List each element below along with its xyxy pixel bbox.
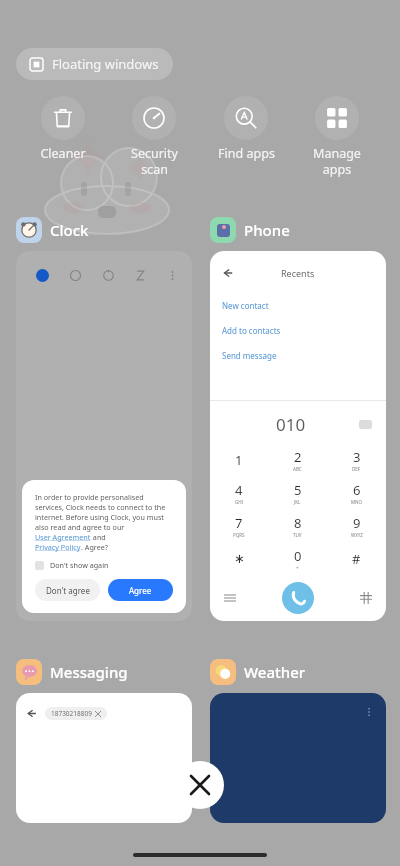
staticText: Add to contacts <box>222 325 281 336</box>
button[interactable]: Add to contacts <box>210 318 386 343</box>
staticText: Don't agree <box>46 585 90 596</box>
button[interactable]: Security scan <box>115 94 193 179</box>
button[interactable]: # <box>327 542 386 575</box>
other: Back <box>222 267 234 279</box>
staticText: New contact <box>222 300 269 311</box>
staticText: Privacy Policy <box>35 542 81 552</box>
staticText: GHI <box>235 499 244 505</box>
staticText: Weather <box>244 662 306 682</box>
button[interactable]: Call <box>282 582 314 614</box>
button[interactable]: Floating windows <box>16 48 173 80</box>
staticText: Find apps <box>218 145 275 162</box>
button[interactable]: Don't show again <box>35 560 109 570</box>
staticText: 6 <box>353 481 361 499</box>
staticText: ABC <box>293 466 302 472</box>
button[interactable]: 3 <box>327 444 386 476</box>
staticText: Don't show again <box>50 560 109 570</box>
button[interactable]: 8 <box>268 509 327 542</box>
button[interactable]: 5 <box>268 476 327 509</box>
staticText: 1 <box>235 451 243 469</box>
button[interactable]: 18730218809 <box>45 707 107 720</box>
staticText: Security scan <box>131 145 178 177</box>
button[interactable]: 2 <box>268 444 327 476</box>
other: Back <box>26 708 37 719</box>
staticText: DEF <box>352 466 361 472</box>
staticText: Manage apps <box>313 145 361 177</box>
staticText: ∗ <box>234 551 245 566</box>
staticText: 9 <box>353 514 361 532</box>
staticText: + <box>296 565 299 571</box>
staticText: 8 <box>294 514 302 532</box>
button[interactable]: 9 <box>327 509 386 542</box>
button[interactable]: Backspace <box>359 420 372 429</box>
staticText: # <box>352 550 361 568</box>
staticText: Clock <box>50 220 89 240</box>
button[interactable]: 4 <box>210 476 268 509</box>
staticText: 3 <box>353 448 361 466</box>
button[interactable]: Menu <box>224 592 236 604</box>
button[interactable]: Send message <box>210 343 386 368</box>
staticText: Agree <box>129 585 152 596</box>
staticText: Send message <box>222 350 277 361</box>
button[interactable]: Manage apps <box>298 94 376 179</box>
button[interactable]: 6 <box>327 476 386 509</box>
staticText: PQRS <box>233 532 245 538</box>
button[interactable]: Agree <box>108 579 173 601</box>
button[interactable]: Cleaner <box>24 94 102 164</box>
button[interactable]: Back <box>210 251 386 621</box>
button[interactable]: Clock <box>16 217 89 243</box>
staticText: Messaging <box>50 662 128 682</box>
button[interactable]: Don't agree <box>35 579 100 601</box>
button[interactable]: 0 <box>268 542 327 575</box>
staticText: . Agree? <box>81 542 108 552</box>
staticText: 7 <box>235 514 243 532</box>
staticText: In order to provide personalised service… <box>35 492 173 532</box>
button[interactable]: ∗ <box>210 542 268 575</box>
staticText: User Agreement <box>35 532 91 542</box>
staticText: WXYZ <box>351 532 363 538</box>
button[interactable]: 1 <box>210 444 268 476</box>
button[interactable]: Back <box>16 693 192 823</box>
button[interactable]: Messaging <box>16 659 128 685</box>
staticText: Recents <box>281 267 315 279</box>
staticText: Phone <box>244 220 290 240</box>
button[interactable]: Find apps <box>207 94 285 164</box>
button[interactable]: Weather <box>210 659 306 685</box>
staticText: TUV <box>293 532 302 538</box>
staticText: 4 <box>235 481 243 499</box>
button[interactable]: Dialpad <box>360 592 372 604</box>
staticText: 5 <box>294 481 302 499</box>
button[interactable]: Clear all <box>176 761 224 809</box>
button[interactable]: New contact <box>210 293 386 318</box>
staticText: Cleaner <box>40 145 86 162</box>
staticText: 18730218809 <box>51 709 92 718</box>
staticText: 2 <box>294 448 302 466</box>
staticText: MNO <box>351 499 363 505</box>
button[interactable] <box>210 693 386 823</box>
staticText: Floating windows <box>52 55 159 73</box>
button[interactable]: Phone <box>210 217 290 243</box>
staticText: 0 <box>294 547 302 565</box>
staticText: JKL <box>294 499 301 505</box>
staticText: 010 <box>276 413 306 436</box>
button[interactable]: In order to provide personalised service… <box>16 251 192 621</box>
button[interactable]: 7 <box>210 509 268 542</box>
staticText: and <box>91 532 108 542</box>
